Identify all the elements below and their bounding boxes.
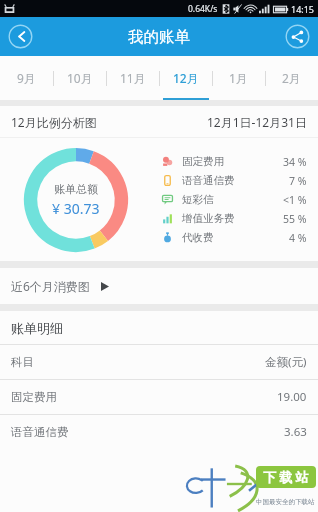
staticText: 近6个月消费图 <box>11 278 90 294</box>
staticText: 14:15 <box>291 3 315 15</box>
staticText: ¥ 30.73 <box>52 199 100 218</box>
staticText: 固定费用 <box>11 390 57 404</box>
button[interactable]: 近6个月消费图 <box>0 268 318 304</box>
staticText: 12月比例分析图 <box>11 114 97 130</box>
button[interactable]: 固定费用 <box>0 380 318 414</box>
staticText: 34 % <box>283 155 307 169</box>
staticText: 2月 <box>282 70 301 86</box>
staticText: 中国最安全的下载站 <box>256 498 315 506</box>
staticText: 55 % <box>283 212 307 226</box>
staticText: 账单总额 <box>54 182 98 196</box>
staticText: 金额(元) <box>265 354 307 370</box>
button[interactable]: 1月 <box>212 56 265 100</box>
button[interactable]: Share <box>285 24 310 49</box>
staticText: <1 % <box>283 193 307 207</box>
staticText: 下 载 站 <box>263 468 309 486</box>
staticText: 固定费用 <box>182 155 224 168</box>
staticText: 代收费 <box>182 231 214 244</box>
staticText: 我的账单 <box>128 27 190 47</box>
staticText: 0.64K/s <box>188 3 218 15</box>
staticText: 12月1日-12月31日 <box>207 114 307 130</box>
staticText: 10月 <box>67 70 93 86</box>
staticText: 1月 <box>229 70 248 86</box>
staticText: 语音通信费 <box>182 174 235 187</box>
button[interactable]: 11月 <box>106 56 159 100</box>
staticText: 11月 <box>120 70 146 86</box>
staticText: 账单明细 <box>11 320 63 336</box>
staticText: 12月 <box>173 70 199 86</box>
button[interactable]: Back <box>8 24 33 49</box>
staticText: 科目 <box>11 355 34 369</box>
staticText: 19.00 <box>277 389 307 405</box>
staticText: 3.63 <box>284 424 307 440</box>
button[interactable]: 2月 <box>265 56 318 100</box>
button[interactable]: 语音通信费 <box>0 415 318 449</box>
button[interactable]: 9月 <box>0 56 53 100</box>
button[interactable]: 12月 <box>159 56 212 100</box>
button[interactable]: 科目 <box>0 345 318 379</box>
staticText: 增值业务费 <box>182 212 235 225</box>
staticText: 7 % <box>289 174 307 188</box>
staticText: 9月 <box>17 70 36 86</box>
staticText: 语音通信费 <box>11 425 69 439</box>
staticText: 短彩信 <box>182 193 214 206</box>
staticText: 4 % <box>289 231 307 245</box>
button[interactable]: 10月 <box>53 56 106 100</box>
